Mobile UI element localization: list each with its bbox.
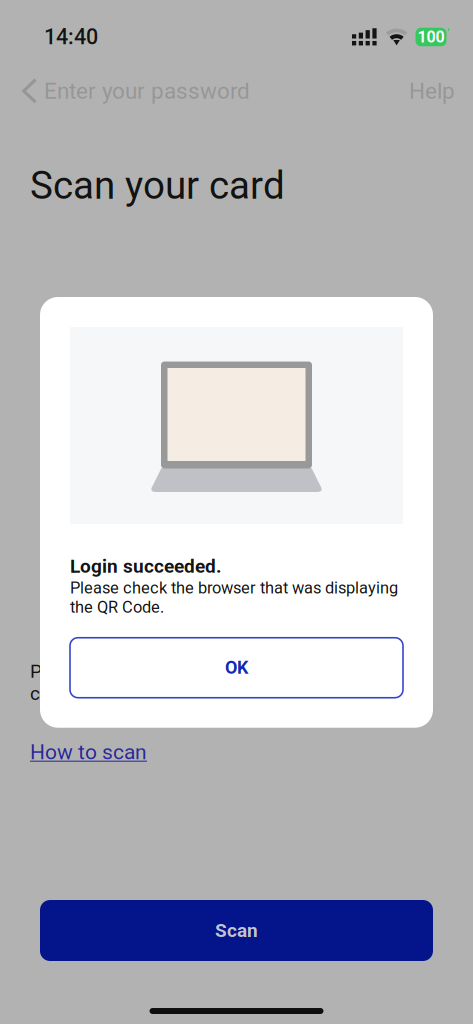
button[interactable]: Help xyxy=(409,69,473,113)
staticText: OK xyxy=(225,657,248,678)
staticText: How to scan xyxy=(30,740,147,764)
staticText: Please hold your card near the phone to … xyxy=(30,660,363,705)
button[interactable]: Enter your password xyxy=(0,69,409,113)
button[interactable]: How to scan xyxy=(0,738,147,766)
staticText: Scan your card xyxy=(30,163,285,208)
staticText: Help xyxy=(409,78,455,104)
staticText: 14:40 xyxy=(44,24,98,50)
button[interactable]: Scan xyxy=(40,900,433,961)
button[interactable]: OK xyxy=(70,638,403,698)
staticText: Enter your password xyxy=(44,78,250,104)
staticText: Login succeeded. xyxy=(70,555,222,577)
staticText: Scan xyxy=(215,919,258,942)
staticText: Please check the browser that was displa… xyxy=(70,578,398,617)
staticText: 100 xyxy=(417,28,444,46)
